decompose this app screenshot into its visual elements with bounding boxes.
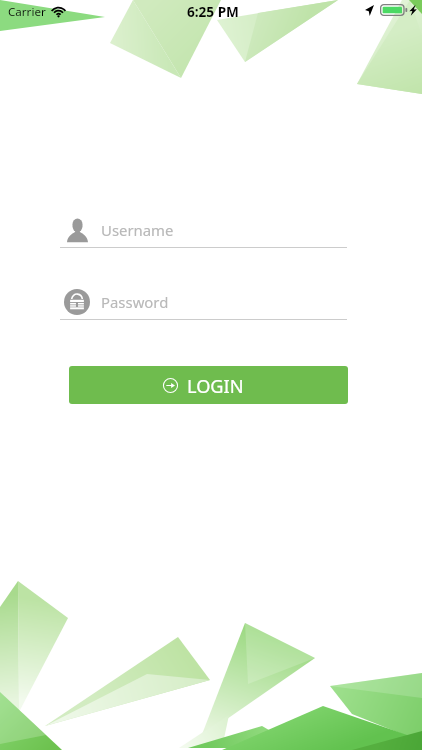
staticText: Password [101, 292, 169, 312]
button[interactable]: Username [60, 214, 347, 248]
button[interactable]: LOGIN [69, 366, 348, 404]
other: Location [365, 5, 374, 16]
button[interactable]: Password [60, 286, 347, 320]
staticText: Carrier [8, 4, 46, 20]
staticText: 6:25 PM [187, 2, 239, 21]
staticText: LOGIN [187, 374, 244, 399]
staticText: Username [101, 220, 174, 240]
